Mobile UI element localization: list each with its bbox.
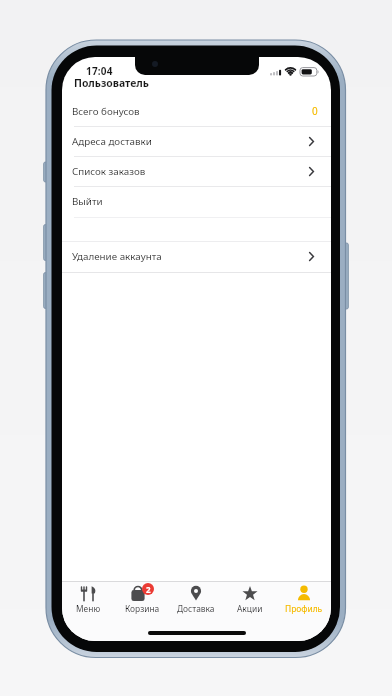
staticText: Акции bbox=[237, 603, 263, 614]
staticText: Меню bbox=[76, 603, 101, 614]
staticText: Всего бонусов bbox=[72, 105, 140, 118]
staticText: Доставка bbox=[177, 603, 215, 614]
staticText: Список заказов bbox=[72, 165, 146, 178]
staticText: Адреса доставки bbox=[72, 135, 152, 148]
staticText: Удаление аккаунта bbox=[72, 250, 162, 263]
button[interactable]: Профиль bbox=[277, 582, 331, 641]
button[interactable]: Доставка bbox=[169, 582, 223, 641]
button[interactable]: Список заказов bbox=[62, 156, 331, 186]
staticText: Пользователь bbox=[74, 76, 149, 90]
button[interactable]: Всего бонусов bbox=[62, 96, 331, 126]
staticText: 0 bbox=[312, 104, 318, 118]
staticText: 2 bbox=[146, 584, 151, 595]
button[interactable]: 2 bbox=[115, 582, 169, 641]
button[interactable]: Выйти bbox=[62, 186, 331, 216]
button[interactable]: Меню bbox=[62, 582, 115, 641]
staticText: Выйти bbox=[72, 195, 103, 208]
button[interactable]: Удаление аккаунта bbox=[62, 241, 331, 272]
button[interactable]: Акции bbox=[223, 582, 277, 641]
staticText: Профиль bbox=[285, 603, 323, 614]
button[interactable]: Адреса доставки bbox=[62, 126, 331, 157]
staticText: 17:04 bbox=[86, 64, 113, 77]
staticText: Корзина bbox=[125, 603, 160, 614]
